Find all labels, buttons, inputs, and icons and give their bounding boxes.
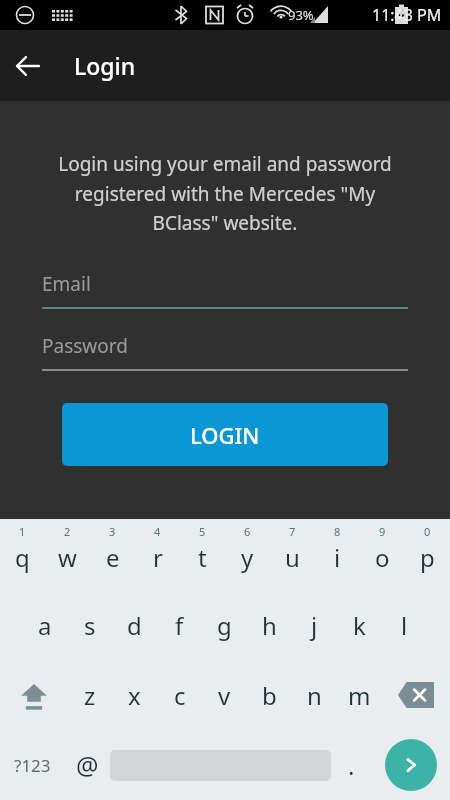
button[interactable]: Password: [42, 333, 408, 371]
staticText: i: [334, 541, 341, 574]
button[interactable]: 9: [360, 519, 405, 590]
button[interactable]: Backspace: [382, 660, 450, 730]
button[interactable]: x: [112, 660, 157, 730]
button[interactable]: Enter: [372, 730, 450, 800]
staticText: v: [218, 679, 231, 712]
button[interactable]: s: [67, 590, 112, 660]
staticText: h: [262, 609, 277, 642]
button[interactable]: 8: [315, 519, 360, 590]
staticText: y: [241, 541, 254, 574]
staticText: k: [353, 609, 366, 642]
button[interactable]: m: [337, 660, 382, 730]
staticText: 6: [244, 524, 251, 539]
staticText: Login: [74, 50, 136, 81]
staticText: Email: [42, 271, 91, 297]
staticText: ?123: [14, 754, 51, 777]
button[interactable]: [110, 730, 331, 800]
staticText: t: [198, 541, 207, 574]
staticText: 9: [379, 524, 386, 539]
staticText: LOGIN: [190, 420, 260, 450]
button[interactable]: 0: [405, 519, 450, 590]
staticText: l: [401, 609, 408, 642]
staticText: Password: [42, 333, 128, 359]
button[interactable]: a: [22, 590, 67, 660]
button[interactable]: 4: [135, 519, 180, 590]
button[interactable]: v: [202, 660, 247, 730]
staticText: 2: [64, 524, 71, 539]
staticText: 11:43 PM: [372, 4, 442, 26]
staticText: Login using your email and password regi…: [42, 151, 408, 235]
staticText: b: [262, 679, 277, 712]
staticText: z: [84, 679, 96, 712]
staticText: j: [311, 609, 318, 642]
staticText: m: [348, 679, 371, 712]
button[interactable]: n: [292, 660, 337, 730]
button[interactable]: h: [247, 590, 292, 660]
button[interactable]: 5: [180, 519, 225, 590]
staticText: 1: [19, 524, 26, 539]
staticText: @: [76, 748, 99, 782]
staticText: 0: [424, 524, 431, 539]
staticText: c: [174, 679, 186, 712]
staticText: p: [420, 541, 435, 574]
button[interactable]: LOGIN: [62, 403, 388, 466]
staticText: g: [217, 609, 232, 642]
staticText: 4: [154, 524, 161, 539]
staticText: d: [127, 609, 142, 642]
staticText: w: [58, 541, 77, 574]
staticText: 5: [199, 524, 206, 539]
button[interactable]: d: [112, 590, 157, 660]
staticText: e: [106, 541, 120, 574]
button[interactable]: z: [67, 660, 112, 730]
button[interactable]: 3: [90, 519, 135, 590]
button[interactable]: l: [382, 590, 427, 660]
button[interactable]: Email: [42, 271, 408, 309]
button[interactable]: k: [337, 590, 382, 660]
button[interactable]: ?123: [0, 730, 65, 800]
button[interactable]: 6: [225, 519, 270, 590]
button[interactable]: g: [202, 590, 247, 660]
button[interactable]: 7: [270, 519, 315, 590]
button[interactable]: f: [157, 590, 202, 660]
staticText: 8: [334, 524, 341, 539]
staticText: .: [348, 749, 355, 782]
button[interactable]: 2: [45, 519, 90, 590]
staticText: o: [375, 541, 390, 574]
button[interactable]: c: [157, 660, 202, 730]
button[interactable]: Shift: [0, 660, 67, 730]
staticText: 93%: [288, 6, 314, 24]
staticText: f: [175, 609, 184, 642]
staticText: x: [128, 679, 141, 712]
button[interactable]: @: [65, 730, 110, 800]
button[interactable]: Back: [0, 38, 56, 94]
staticText: a: [38, 609, 52, 642]
staticText: u: [285, 541, 300, 574]
button[interactable]: j: [292, 590, 337, 660]
button[interactable]: 1: [0, 519, 45, 590]
staticText: r: [153, 541, 163, 574]
button[interactable]: .: [331, 730, 372, 800]
staticText: s: [84, 609, 96, 642]
staticText: q: [15, 541, 30, 574]
staticText: 7: [289, 524, 296, 539]
staticText: n: [307, 679, 322, 712]
staticText: 3: [109, 524, 116, 539]
button[interactable]: b: [247, 660, 292, 730]
